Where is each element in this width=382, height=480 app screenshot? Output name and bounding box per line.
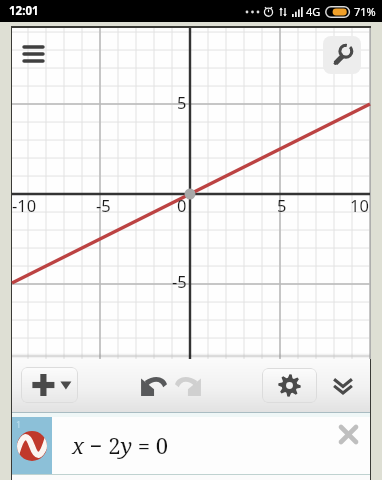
button[interactable]: Settings — [262, 368, 317, 403]
staticText: -10 — [12, 194, 37, 216]
button[interactable]: Toggle graph visibility — [12, 417, 52, 474]
staticText: 4G — [306, 4, 321, 19]
staticText: 5 — [177, 91, 187, 113]
button[interactable]: Graph settings — [323, 36, 361, 74]
staticText: -5 — [96, 194, 111, 216]
button[interactable]: Redo — [171, 368, 205, 402]
button[interactable]: Expand list — [325, 367, 361, 403]
button[interactable]: Delete expression — [333, 419, 363, 449]
staticText: x − 2y = 0 — [72, 430, 169, 460]
button[interactable]: Add expression — [21, 367, 78, 403]
staticText: 0 — [177, 194, 187, 216]
button[interactable]: Menu — [16, 37, 50, 71]
button[interactable]: Undo — [136, 368, 170, 402]
staticText: 71% — [354, 4, 376, 19]
staticText: 10 — [350, 194, 369, 216]
staticText: -5 — [172, 270, 187, 292]
staticText: 12:01 — [9, 3, 39, 19]
staticText: 5 — [277, 194, 287, 216]
staticText: 1 — [16, 418, 22, 430]
